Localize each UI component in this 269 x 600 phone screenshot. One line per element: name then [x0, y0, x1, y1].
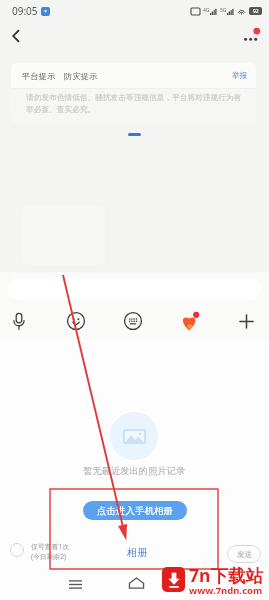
staticText: 仅可查看1次: [31, 542, 69, 551]
button[interactable]: Add: [233, 308, 259, 334]
staticText: 请勿发布色情低俗、骚扰攻击等违规信息，平台将对违规行为有举必查、查实必究。: [26, 93, 248, 114]
staticText: 点击进入手机相册: [97, 505, 173, 517]
staticText: 暂无最近发出的照片记录: [83, 465, 186, 477]
button[interactable]: 相册: [127, 546, 147, 559]
staticText: 5G: [220, 7, 227, 14]
staticText: 09:05: [12, 4, 38, 18]
button[interactable]: 点击进入手机相册: [83, 501, 187, 520]
staticText: 相册: [127, 546, 147, 559]
button[interactable]: Gift: [177, 308, 203, 334]
button[interactable]: Recent apps: [62, 571, 88, 597]
button[interactable]: Voice message: [6, 308, 32, 334]
staticText: 92: [253, 8, 259, 15]
button[interactable]: [10, 543, 24, 557]
button[interactable]: Back: [3, 23, 29, 49]
staticText: 7n下载站: [189, 563, 263, 587]
button[interactable]: Emoji: [63, 308, 89, 334]
staticText: 防灾提示: [64, 71, 98, 81]
staticText: 4G: [203, 7, 210, 14]
staticText: 发送: [237, 550, 252, 559]
button[interactable]: More options: [235, 24, 265, 54]
staticText: 平台提示: [22, 71, 56, 81]
button[interactable]: Home: [123, 570, 149, 596]
button[interactable]: 举报: [232, 71, 247, 80]
staticText: www.7ndn.com: [189, 584, 263, 597]
button[interactable]: Keyboard: [120, 308, 146, 334]
staticText: (今日剩余2): [31, 552, 67, 561]
button[interactable]: [8, 278, 261, 300]
button[interactable]: 发送: [227, 545, 261, 563]
